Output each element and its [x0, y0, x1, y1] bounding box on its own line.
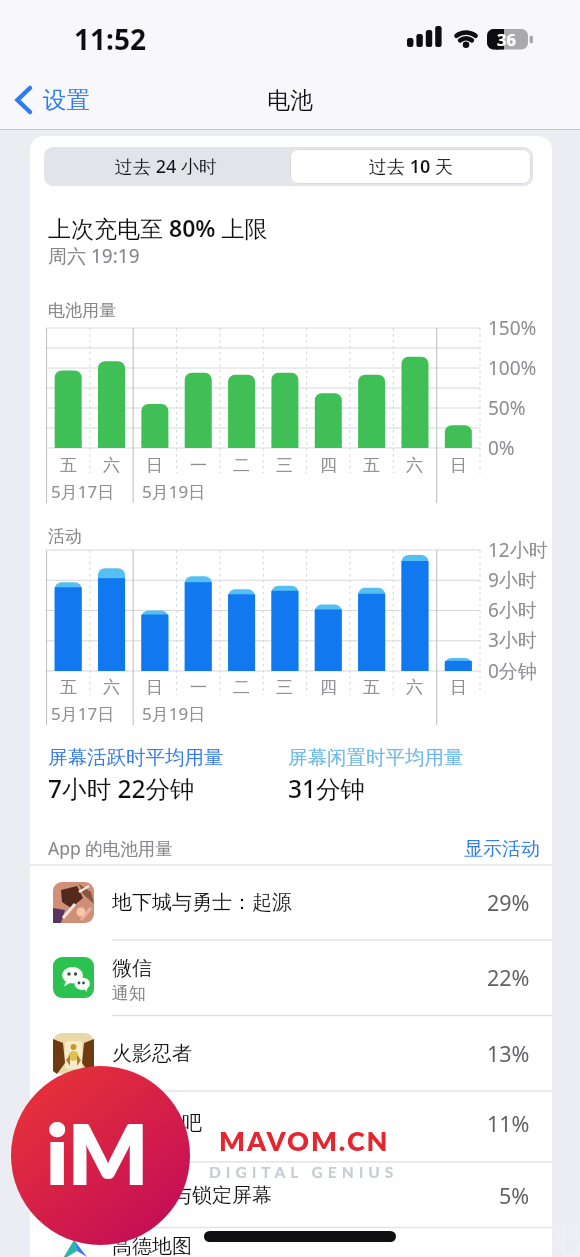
staticText: 三 [276, 677, 293, 698]
staticText: 一 [190, 677, 207, 698]
staticText: 9小时 [488, 567, 537, 593]
staticText: 5月19日 [142, 702, 206, 725]
staticText: 过去 10 天 [369, 154, 453, 179]
staticText: 百度贴吧 [122, 1111, 202, 1136]
button[interactable]: 高德地图 [30, 1216, 550, 1257]
staticText: 三 [276, 455, 293, 476]
staticText: 22% [487, 963, 530, 992]
button[interactable]: 火影忍者 [30, 1015, 550, 1091]
staticText: 吧 [547, 1219, 580, 1257]
staticText: 五 [363, 677, 380, 698]
staticText: 日 [450, 455, 467, 476]
button[interactable]: 微信 [30, 940, 550, 1015]
button[interactable]: 地下城与勇士：起源 [30, 865, 550, 940]
staticText: 五 [363, 455, 380, 476]
staticText: 29% [487, 888, 530, 917]
button[interactable]: 百度贴吧 [30, 1091, 550, 1155]
staticText: 日 [146, 455, 163, 476]
button[interactable]: 显示活动 [440, 830, 540, 868]
staticText: 火影忍者 [112, 1041, 192, 1066]
button[interactable] [8, 76, 120, 124]
staticText: 过去 24 小时 [115, 154, 217, 179]
button[interactable]: 过去 10 天 [288, 147, 533, 186]
button[interactable]: 主屏幕与锁定屏幕 [30, 1162, 550, 1228]
staticText: 0% [488, 435, 515, 461]
staticText: 5月17日 [51, 480, 115, 503]
staticText: 四 [320, 677, 337, 698]
staticText: 活动 [48, 526, 82, 547]
staticText: 显示活动 [464, 837, 540, 861]
staticText: 六 [103, 677, 120, 698]
staticText: 150% [488, 315, 537, 341]
staticText: 5% [499, 1181, 530, 1210]
staticText: App 的电池用量 [48, 836, 173, 860]
staticText: 12小时 [488, 537, 548, 563]
staticText: 5月19日 [142, 480, 206, 503]
staticText: 6小时 [488, 597, 537, 623]
staticText: 微信 [112, 956, 152, 981]
staticText: 二 [233, 455, 250, 476]
staticText: 六 [103, 455, 120, 476]
staticText: 二 [233, 677, 250, 698]
staticText: 5月17日 [51, 702, 115, 725]
staticText: 3小时 [488, 627, 537, 653]
staticText: 五 [60, 455, 77, 476]
staticText: 高德地图 [112, 1234, 192, 1257]
staticText: 7小时 22分钟 [48, 772, 195, 805]
button[interactable]: 过去 24 小时 [44, 147, 288, 186]
staticText: 一 [190, 455, 207, 476]
staticText: 设置 [43, 85, 90, 115]
staticText: 六 [406, 677, 423, 698]
staticText: 地下城与勇士：起源 [112, 890, 292, 915]
staticText: MAVOM.CN [219, 1124, 390, 1156]
staticText: 四 [320, 455, 337, 476]
staticText: 日 [450, 677, 467, 698]
staticText: 电池 [267, 86, 313, 115]
staticText: 上次充电至 80% 上限 [48, 212, 268, 243]
staticText: 主屏幕与锁定屏幕 [112, 1183, 272, 1208]
staticText: 六 [406, 455, 423, 476]
staticText: 13% [487, 1039, 530, 1068]
staticText: iM [46, 1102, 149, 1203]
staticText: 0分钟 [488, 658, 537, 684]
staticText: 五 [60, 677, 77, 698]
staticText: 11% [487, 1109, 530, 1138]
staticText: 屏幕闲置时平均用量 [288, 745, 464, 770]
staticText: 50% [488, 395, 526, 421]
staticText: 日 [146, 677, 163, 698]
staticText: 36 [497, 28, 516, 50]
staticText: 电池用量 [48, 300, 116, 321]
staticText: 31分钟 [288, 772, 366, 805]
staticText: 屏幕活跃时平均用量 [48, 745, 224, 770]
staticText: 周六 19:19 [48, 243, 140, 269]
staticText: 100% [488, 355, 537, 381]
staticText: 通知 [112, 983, 146, 1004]
staticText: 11:52 [74, 20, 146, 58]
staticText: DIGITAL GENIUS [209, 1163, 399, 1182]
